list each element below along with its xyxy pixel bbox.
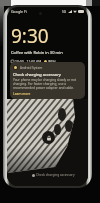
button[interactable]: Android System [10, 62, 85, 99]
staticText: Your phone may be charging slowly or not… [13, 78, 82, 90]
button[interactable]: Unlock [42, 131, 55, 144]
staticText: 9:30 [11, 23, 49, 49]
staticText: Android System [20, 66, 43, 70]
staticText: Google Fi [11, 9, 27, 14]
staticText: Check charging accessory [36, 173, 75, 177]
button[interactable]: Learn more [13, 92, 31, 96]
button[interactable]: Check charging accessory [32, 173, 75, 177]
staticText: 10:00 - 11:00 AM [15, 59, 42, 64]
staticText: 5G [62, 10, 67, 14]
staticText: Coffee with Robin in 30 min [11, 50, 63, 55]
staticText: WFH [48, 59, 56, 64]
staticText: Check charging accessory [13, 72, 61, 77]
